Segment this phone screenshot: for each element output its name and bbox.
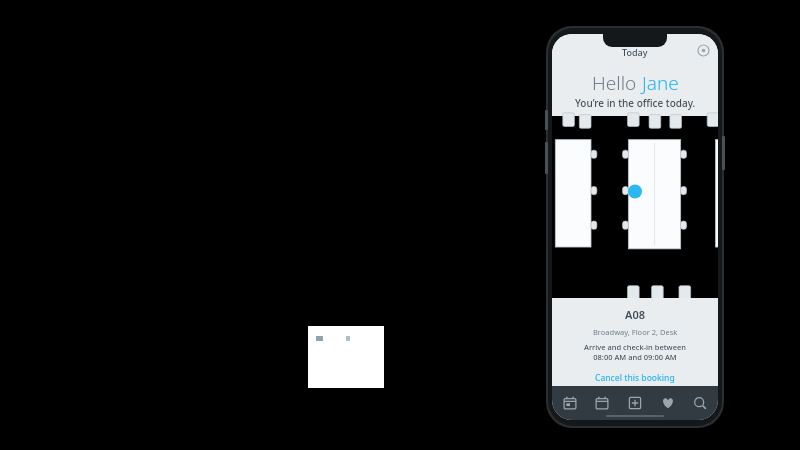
button[interactable]: Cancel this booking [589,370,681,386]
staticText: Cancel this booking [595,372,675,384]
staticText: You’re in the office today. [575,96,696,110]
staticText: Hello [592,70,642,96]
button[interactable]: Favourites [653,386,683,420]
button[interactable] [308,326,384,388]
staticText: Broadway, Floor 2, Desk [593,327,678,337]
button[interactable]: Profile [697,44,710,57]
button[interactable]: Schedule [587,386,617,420]
button[interactable]: Add booking [620,386,650,420]
staticText: A08 [625,307,645,322]
staticText: 08:00 AM and 09:00 AM [593,352,677,362]
staticText: Jane [642,70,679,96]
button[interactable]: Search [685,386,715,420]
staticText: Arrive and check-in between [584,342,686,352]
staticText: Today [622,46,648,58]
button[interactable]: A08 [552,298,718,386]
button[interactable]: Bookings [555,386,585,420]
